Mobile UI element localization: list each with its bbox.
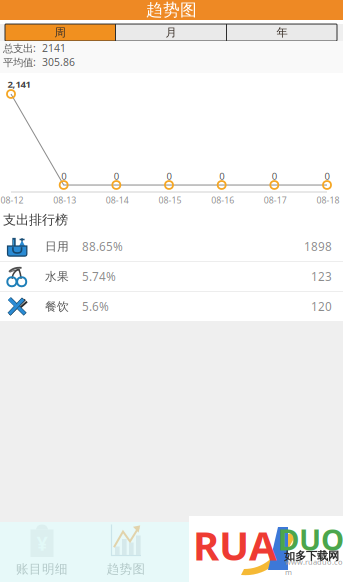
staticText: 趋势图 [106, 561, 145, 577]
staticText: 总支出: 2141 [3, 41, 66, 55]
button[interactable]: 餐饮 [0, 292, 343, 321]
button[interactable]: ¥ [0, 522, 84, 582]
staticText: 日用 [45, 239, 69, 254]
staticText: 0 [61, 169, 66, 183]
staticText: 0 [114, 169, 119, 183]
button[interactable]: 水果 [0, 262, 343, 291]
staticText: 1898 [304, 238, 332, 254]
staticText: ¥ [36, 529, 47, 557]
staticText: www.ruaduo.com [285, 557, 343, 577]
staticText: RUA [193, 518, 277, 572]
staticText: 08-12 [0, 194, 23, 206]
staticText: DUO [278, 519, 343, 559]
staticText: 趋势图 [146, 0, 197, 20]
staticText: 年 [276, 25, 287, 40]
button[interactable]: 日用 [0, 232, 343, 261]
staticText: 120 [311, 298, 332, 314]
staticText: 88.65% [82, 238, 123, 254]
staticText: 餐饮 [45, 299, 69, 314]
staticText: 月 [165, 25, 176, 40]
button[interactable]: 年 [227, 24, 337, 41]
staticText: 账目明细 [16, 561, 68, 577]
staticText: 08-17 [264, 194, 287, 206]
staticText: 08-14 [106, 194, 129, 206]
staticText: 08-13 [53, 194, 76, 206]
button[interactable]: 周 [5, 24, 115, 41]
staticText: 08-15 [158, 194, 181, 206]
staticText: 5.6% [82, 298, 109, 314]
staticText: 08-16 [211, 194, 234, 206]
button[interactable]: 月 [116, 24, 226, 41]
staticText: 0 [324, 169, 329, 183]
staticText: 平均值: 305.86 [3, 55, 75, 69]
staticText: 如多下载网 [284, 549, 339, 563]
staticText: 123 [311, 268, 332, 284]
button[interactable]: 趋势图 [84, 522, 168, 582]
staticText: 0 [219, 169, 224, 183]
staticText: 支出排行榜 [3, 212, 68, 228]
staticText: 周 [54, 25, 65, 40]
staticText: 0 [166, 169, 171, 183]
staticText: 08-18 [316, 194, 339, 206]
staticText: 水果 [45, 269, 69, 284]
staticText: 0 [272, 169, 277, 183]
staticText: 2,141 [7, 77, 30, 91]
staticText: 5.74% [82, 268, 116, 284]
